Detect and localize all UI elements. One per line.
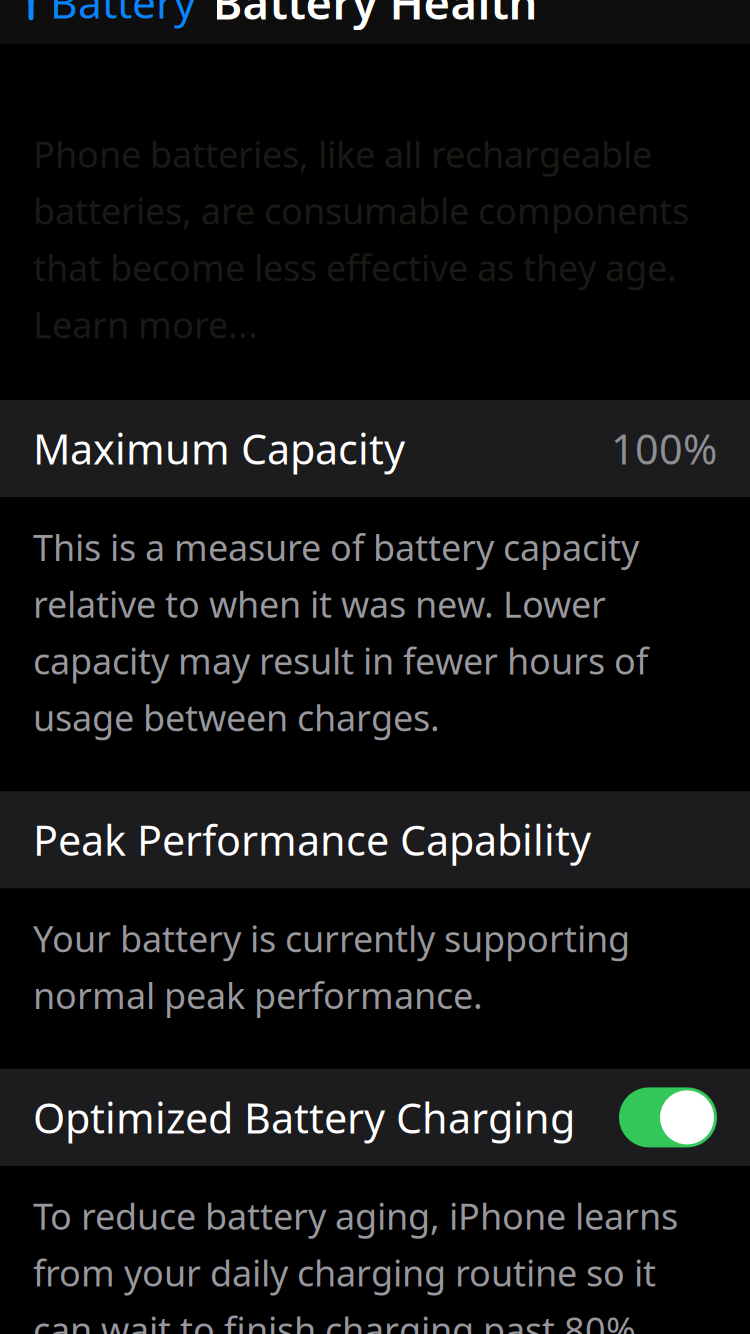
staticText: Optimized Battery Charging: [33, 1090, 575, 1145]
staticText: Maximum Capacity: [33, 421, 405, 476]
staticText: Phone batteries, like all rechargeable b…: [33, 130, 689, 348]
staticText: Battery: [50, 0, 196, 30]
button[interactable]: Maximum Capacity: [0, 400, 750, 497]
button[interactable]: Optimized Battery Charging: [0, 1069, 750, 1166]
button[interactable]: Battery: [0, 0, 196, 42]
staticText: To reduce battery aging, iPhone learns f…: [33, 1192, 678, 1334]
staticText: Your battery is currently supporting nor…: [33, 914, 630, 1019]
staticText: 100%: [611, 421, 717, 476]
staticText: Peak Performance Capability: [33, 812, 591, 867]
staticText: Battery Health: [212, 0, 537, 32]
button[interactable]: Peak Performance Capability: [0, 791, 750, 888]
staticText: This is a measure of battery capacity re…: [33, 523, 648, 741]
